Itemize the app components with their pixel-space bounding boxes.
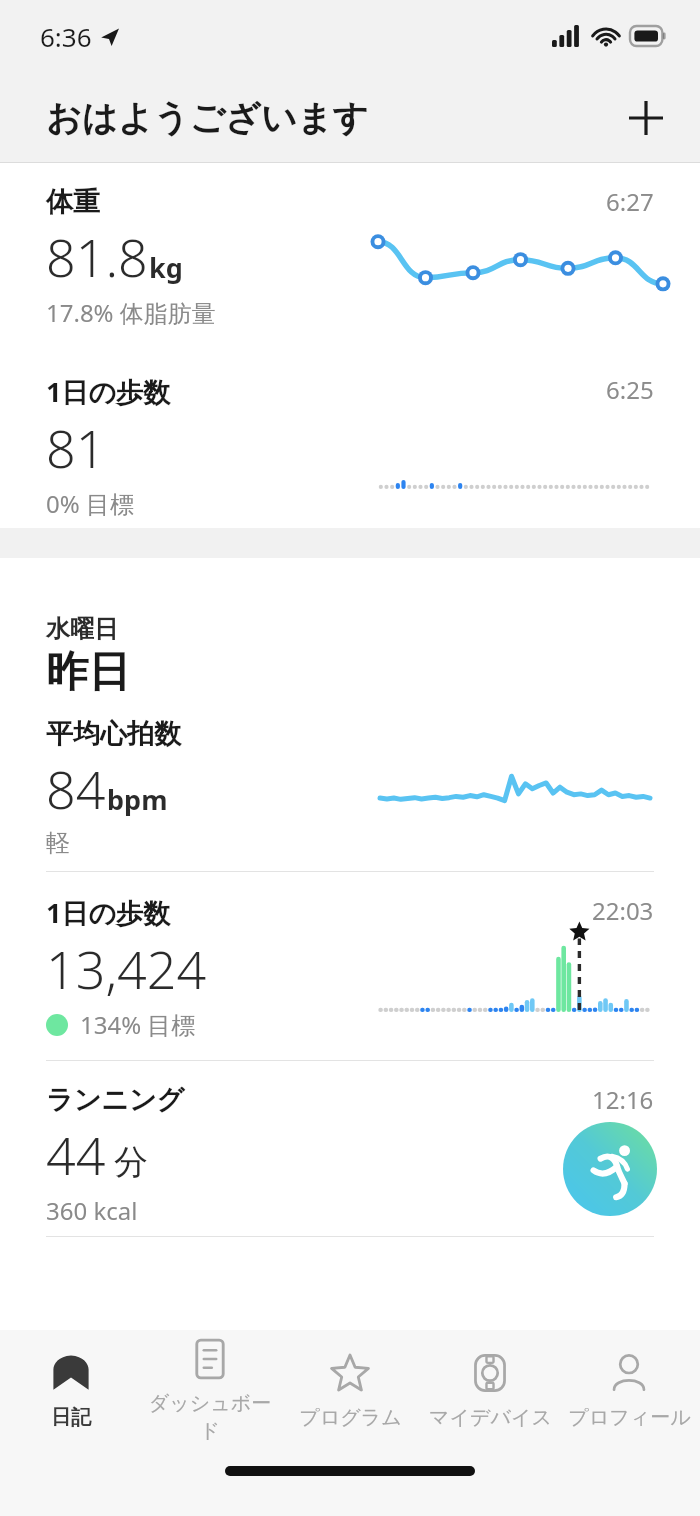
staticText: 17.8% 体脂肪量 [46, 296, 216, 329]
button[interactable]: 22:03 [0, 872, 700, 1060]
staticText: 134% 目標 [80, 1008, 196, 1041]
button[interactable]: Add [616, 88, 676, 148]
staticText: 1日の歩数 [46, 373, 171, 410]
button[interactable]: 12:16 [0, 1061, 700, 1236]
staticText: 84 [46, 753, 106, 824]
button[interactable]: 6:27 [0, 163, 700, 353]
button[interactable]: 6:25 [0, 353, 700, 528]
staticText: 360 kcal [46, 1194, 138, 1227]
staticText: 81.8 [46, 221, 148, 292]
staticText: ランニング [46, 1083, 185, 1117]
button[interactable]: ダッシュボード [141, 1330, 279, 1450]
staticText: 昨日 [46, 646, 130, 699]
staticText: 12:16 [592, 1083, 654, 1116]
staticText: マイデバイス [429, 1405, 552, 1430]
staticText: 日記 [51, 1405, 91, 1430]
staticText: 6:25 [606, 373, 654, 406]
staticText: 水曜日 [46, 614, 118, 644]
staticText: 13,424 [46, 933, 207, 1004]
button[interactable]: マイデバイス [421, 1330, 559, 1450]
staticText: 体重 [46, 185, 100, 219]
button[interactable]: プログラム [281, 1330, 419, 1450]
staticText: 0% 目標 [46, 487, 134, 520]
staticText: 分 [114, 1141, 148, 1184]
staticText: 6:27 [606, 185, 654, 218]
staticText: プロフィール [568, 1405, 691, 1430]
staticText: 平均心拍数 [46, 717, 181, 751]
staticText: bpm [107, 781, 168, 818]
staticText: kg [149, 249, 183, 286]
staticText: 22:03 [592, 894, 654, 927]
staticText: 1日の歩数 [46, 894, 171, 931]
staticText: 6:36 [40, 19, 92, 54]
button[interactable]: 日記 [2, 1330, 140, 1450]
staticText: 44 [46, 1119, 106, 1190]
staticText: プログラム [299, 1405, 402, 1430]
button[interactable]: 平均心拍数 [0, 699, 700, 871]
staticText: ダッシュボード [141, 1391, 279, 1443]
staticText: 81 [46, 412, 106, 483]
staticText: 軽 [46, 828, 70, 858]
button[interactable]: プロフィール [560, 1330, 698, 1450]
staticText: おはようございます [46, 96, 369, 140]
